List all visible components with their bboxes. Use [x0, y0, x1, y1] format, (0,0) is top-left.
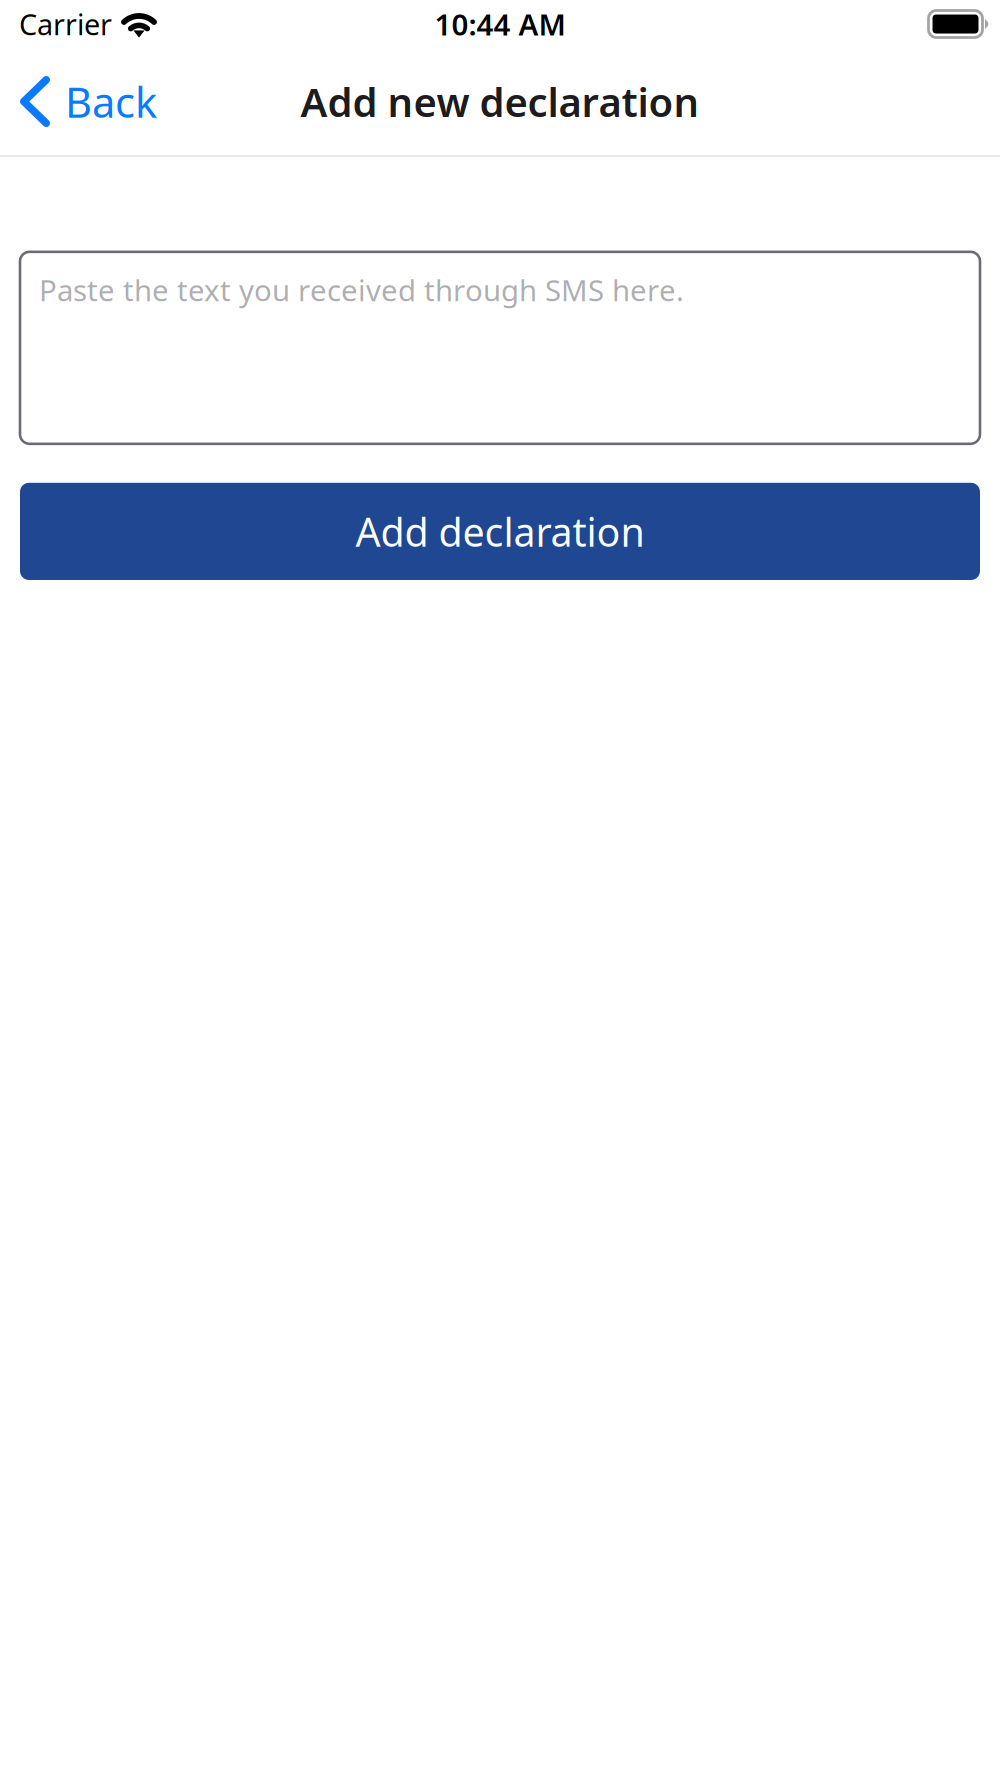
staticText: Carrier — [19, 4, 112, 44]
staticText: Add declaration — [355, 505, 644, 558]
staticText: 10:44 AM — [434, 4, 565, 44]
button[interactable]: Add declaration — [0, 483, 1000, 580]
staticText: Back — [65, 73, 157, 130]
staticText: Add new declaration — [300, 74, 699, 129]
staticText: Paste the text you received through SMS … — [39, 270, 684, 310]
button[interactable]: Back — [0, 58, 171, 144]
button[interactable]: Paste the text you received through SMS … — [0, 252, 1000, 444]
